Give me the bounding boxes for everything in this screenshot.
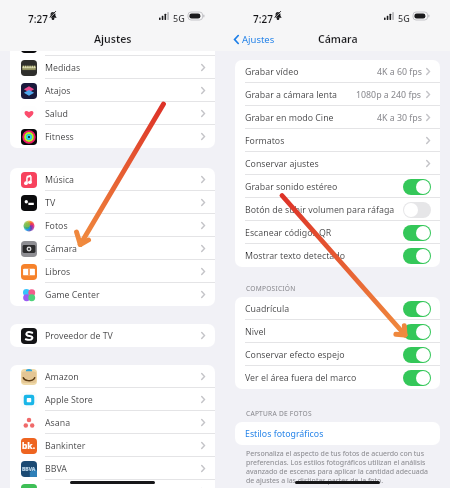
staticText: 4K a 30 fps xyxy=(377,112,422,124)
staticText: BBVA xyxy=(45,463,67,475)
button[interactable]: Activado xyxy=(403,347,431,363)
staticText: Grabar en modo Cine xyxy=(245,112,334,124)
staticText: COMPOSICIÓN xyxy=(246,284,296,293)
staticText: Salud xyxy=(45,108,68,120)
staticText: Fotos xyxy=(45,220,68,232)
button[interactable]: Fotos xyxy=(10,214,215,237)
staticText: Ajustes xyxy=(94,32,132,46)
staticText: Personaliza el aspecto de tus fotos de a… xyxy=(246,449,428,485)
staticText: Asana xyxy=(45,417,71,429)
button[interactable]: Activado xyxy=(403,324,431,340)
button[interactable]: Atajos xyxy=(10,79,215,102)
button[interactable]: Botón de subir volumen para ráfaga xyxy=(235,198,440,221)
button[interactable]: Activado xyxy=(403,370,431,386)
staticText: bk. xyxy=(22,440,36,452)
button[interactable]: Proveedor de TV xyxy=(10,324,215,347)
staticText: Cámara xyxy=(318,32,358,46)
button[interactable]: Grabar vídeo xyxy=(235,60,440,83)
button[interactable]: TV xyxy=(10,191,215,214)
staticText: Botón de subir volumen para ráfaga xyxy=(245,204,395,216)
staticText: Mostrar texto detectado xyxy=(245,250,345,262)
button[interactable]: Escanear códigos QR xyxy=(235,221,440,244)
button[interactable]: Formatos xyxy=(235,129,440,152)
staticText: Cámara xyxy=(45,243,78,255)
button[interactable]: Cuadrícula xyxy=(235,297,440,320)
button[interactable]: Nivel xyxy=(235,320,440,343)
button[interactable]: Reloj xyxy=(10,33,215,56)
button[interactable]: Bizum xyxy=(10,480,215,488)
button[interactable]: Asana xyxy=(10,411,215,434)
staticText: Formatos xyxy=(245,135,285,147)
staticText: Estilos fotográficos xyxy=(245,428,324,440)
staticText: Conservar efecto espejo xyxy=(245,349,345,361)
button[interactable]: Apple Store xyxy=(10,388,215,411)
staticText: Música xyxy=(45,174,75,186)
staticText: Amazon xyxy=(45,371,79,383)
button[interactable]: Activado xyxy=(403,248,431,264)
button[interactable]: Salud xyxy=(10,102,215,125)
staticText: BBVA xyxy=(22,466,36,473)
staticText: 1080p a 240 fps xyxy=(356,89,422,101)
staticText: Cuadrícula xyxy=(245,303,290,315)
staticText: Grabar sonido estéreo xyxy=(245,181,338,193)
button[interactable]: Activado xyxy=(403,301,431,317)
button[interactable]: Ajustes xyxy=(234,33,275,46)
staticText: Libros xyxy=(45,266,71,278)
button[interactable]: Medidas xyxy=(10,56,215,79)
button[interactable]: Libros xyxy=(10,260,215,283)
button[interactable]: Ver el área fuera del marco xyxy=(235,366,440,389)
staticText: 7:27 xyxy=(253,12,273,26)
staticText: Grabar a cámara lenta xyxy=(245,89,338,101)
button[interactable]: BBVA xyxy=(10,457,215,480)
staticText: Apple Store xyxy=(45,394,93,406)
button[interactable]: Grabar en modo Cine xyxy=(235,106,440,129)
staticText: Bankinter xyxy=(45,440,86,452)
staticText: Atajos xyxy=(45,85,71,97)
staticText: Ajustes xyxy=(242,33,275,46)
staticText: Nivel xyxy=(245,326,266,338)
button[interactable]: Cámara xyxy=(10,237,215,260)
button[interactable]: Game Center xyxy=(10,283,215,306)
button[interactable]: Mostrar texto detectado xyxy=(235,244,440,267)
staticText: CAPTURA DE FOTOS xyxy=(246,409,312,418)
staticText: Fitness xyxy=(45,131,74,143)
staticText: Medidas xyxy=(45,62,81,74)
button[interactable]: Grabar sonido estéreo xyxy=(235,175,440,198)
staticText: Grabar vídeo xyxy=(245,66,299,78)
button[interactable]: Fitness xyxy=(10,125,215,148)
button[interactable]: Grabar a cámara lenta xyxy=(235,83,440,106)
button[interactable]: Activado xyxy=(403,179,431,195)
button[interactable]: bk. xyxy=(10,434,215,457)
staticText: Proveedor de TV xyxy=(45,330,113,342)
button[interactable]: Conservar ajustes xyxy=(235,152,440,175)
button[interactable]: Desactivado xyxy=(403,202,431,218)
staticText: 4K a 60 fps xyxy=(377,66,422,78)
button[interactable]: Estilos fotográficos xyxy=(235,422,440,445)
staticText: TV xyxy=(45,197,56,209)
staticText: 5G xyxy=(398,12,410,24)
button[interactable]: Activado xyxy=(403,225,431,241)
staticText: Ver el área fuera del marco xyxy=(245,372,357,384)
button[interactable]: Amazon xyxy=(10,365,215,388)
staticText: Game Center xyxy=(45,289,100,301)
button[interactable]: Conservar efecto espejo xyxy=(235,343,440,366)
staticText: 7:27 xyxy=(28,12,48,26)
staticText: Escanear códigos QR xyxy=(245,227,332,239)
staticText: 5G xyxy=(173,12,185,24)
staticText: Conservar ajustes xyxy=(245,158,319,170)
button[interactable]: Música xyxy=(10,168,215,191)
